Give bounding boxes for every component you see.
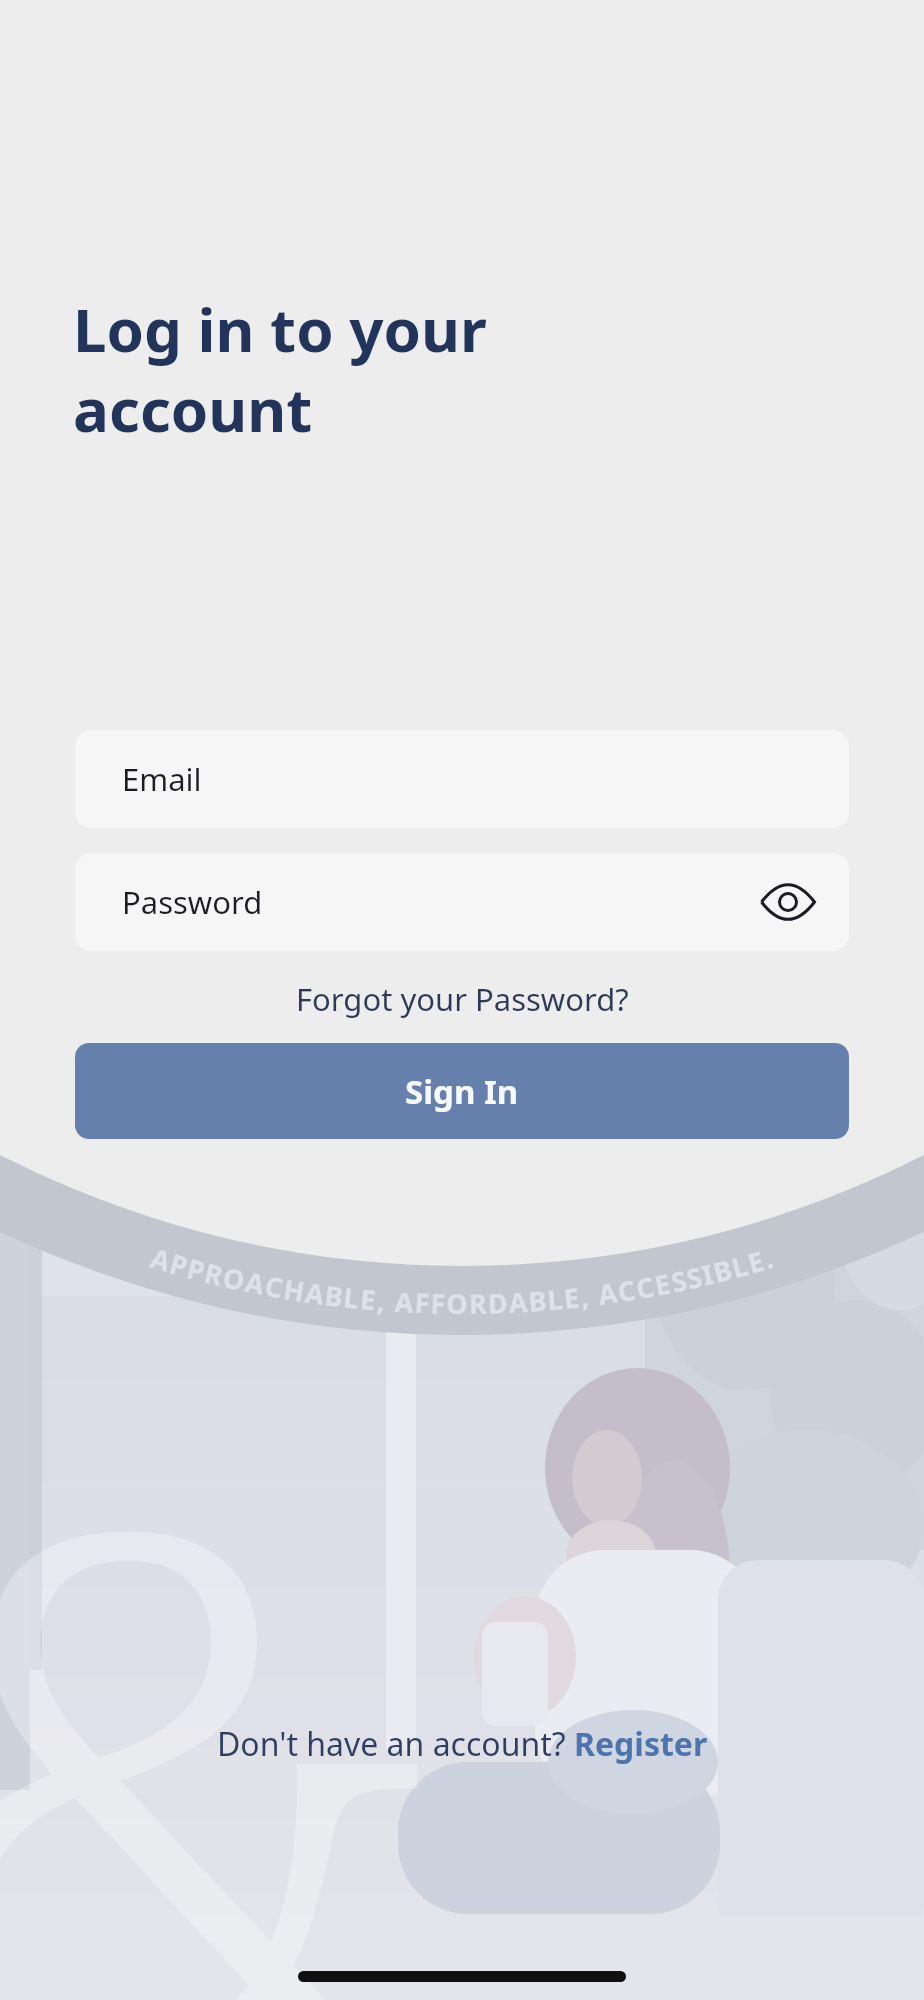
staticText: Password <box>122 881 263 923</box>
button[interactable]: Register <box>574 1722 708 1766</box>
button[interactable]: Sign In <box>75 1043 849 1139</box>
staticText: Forgot your Password? <box>296 978 629 1020</box>
staticText: Sign In <box>405 1069 519 1114</box>
button[interactable] <box>760 885 816 919</box>
button[interactable]: Email <box>75 730 849 828</box>
staticText: Log in to your account <box>73 288 487 449</box>
staticText: Register <box>574 1722 708 1766</box>
button[interactable]: Password <box>75 853 849 951</box>
button[interactable]: Forgot your Password? <box>296 978 629 1020</box>
staticText: Don't have an account? <box>217 1722 574 1766</box>
staticText: Email <box>122 758 202 800</box>
staticText: & <box>0 1270 449 2000</box>
